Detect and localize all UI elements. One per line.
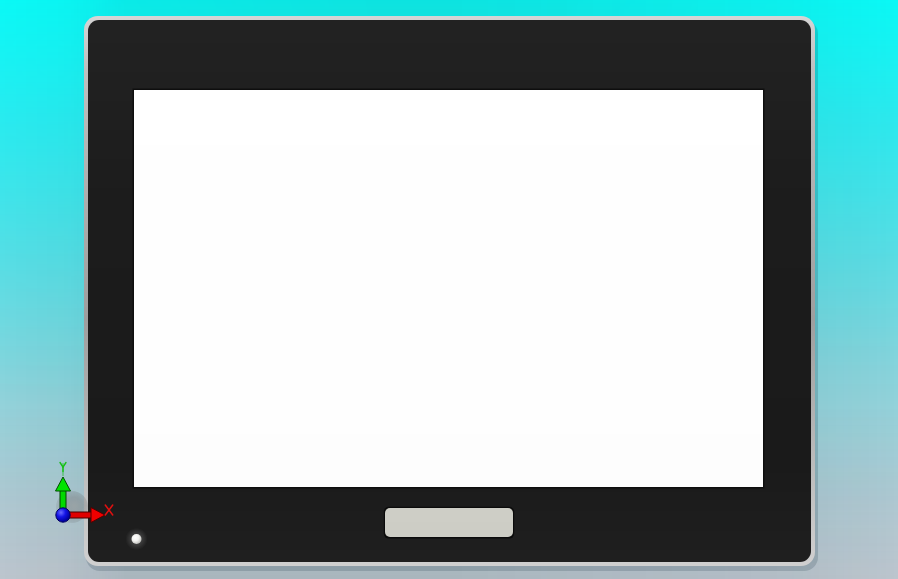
button[interactable]: Power indicator LED: [128, 531, 145, 548]
button[interactable]: Home button: [385, 508, 513, 537]
